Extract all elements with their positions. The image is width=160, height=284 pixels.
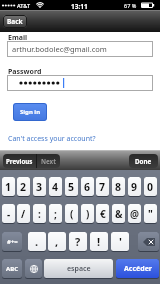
button[interactable]: 7 [96,177,109,196]
button[interactable]: 0 [144,177,157,196]
staticText: / [21,207,26,221]
staticText: Next [41,157,56,165]
staticText: , [55,234,59,249]
button[interactable]: ' [111,232,129,251]
button[interactable] [138,232,159,251]
staticText: Email [8,33,28,43]
staticText: ABC [6,265,18,273]
button[interactable]: . [28,232,46,251]
button[interactable]: ABC [2,259,22,278]
button[interactable]: - [2,204,15,223]
button[interactable]: 5 [65,177,78,196]
staticText: ) [86,207,90,221]
staticText: ' [119,234,122,249]
staticText: 8 [115,180,122,194]
staticText: @ [130,207,139,221]
button[interactable]: 6 [81,177,94,196]
button[interactable]: : [33,204,46,223]
staticText: AT&T [17,2,31,9]
staticText: - [7,207,11,221]
button[interactable]: / [17,204,30,223]
button[interactable]: ) [81,204,94,223]
staticText: ! [97,234,101,249]
staticText: 13:11 [71,2,88,11]
button[interactable]: Accéder [116,259,159,278]
button[interactable]: " [144,204,157,223]
button[interactable]: ? [69,232,87,251]
button[interactable]: ! [90,232,108,251]
staticText: . [35,234,39,249]
staticText: Password [8,67,42,77]
staticText: ? [75,234,81,249]
staticText: 3 [36,180,43,194]
button[interactable]: & [112,204,125,223]
staticText: 5 [68,180,75,194]
button[interactable] [7,75,153,91]
staticText: espace [67,264,91,274]
staticText: 6 [84,180,91,194]
button[interactable]: Can't access your account? [8,134,96,144]
staticText: Previous [6,157,33,165]
staticText: 9 [131,180,138,194]
staticText: Done [135,157,152,165]
staticText: Back [7,17,23,26]
button[interactable]: 2 [17,177,30,196]
staticText: arthur.bodolec@gmail.com [12,44,107,54]
button[interactable]: ; [49,204,62,223]
button[interactable]: espace [44,259,113,278]
button[interactable]: € [96,204,109,223]
staticText: " [148,207,153,221]
button[interactable]: 9 [128,177,141,196]
staticText: 67 % [124,2,137,9]
button[interactable]: Previous [3,154,36,168]
staticText: Sign in [20,108,41,116]
staticText: 7 [99,180,106,194]
button[interactable]: 8 [112,177,125,196]
staticText: 2 [20,180,27,194]
button[interactable]: 3 [33,177,46,196]
staticText: 4 [52,180,59,194]
staticText: : [38,207,41,221]
button[interactable] [25,259,42,278]
button[interactable]: Next [37,154,60,168]
button[interactable]: Sign in [13,103,47,121]
staticText: 0 [147,180,154,194]
button[interactable]: #+= [2,232,22,251]
staticText: ; [54,207,57,221]
staticText: & [115,207,123,221]
button[interactable]: , [48,232,66,251]
staticText: € [100,207,106,221]
button[interactable]: 4 [49,177,62,196]
staticText: ( [70,207,74,221]
button[interactable]: @ [128,204,141,223]
staticText: 1 [5,180,12,194]
button[interactable]: Done [129,154,158,168]
button[interactable]: ( [65,204,78,223]
button[interactable]: Back [3,15,27,28]
staticText: Accéder [124,264,152,274]
staticText: #+= [7,238,18,246]
button[interactable]: arthur.bodolec@gmail.com [7,41,153,57]
button[interactable]: 1 [2,177,15,196]
